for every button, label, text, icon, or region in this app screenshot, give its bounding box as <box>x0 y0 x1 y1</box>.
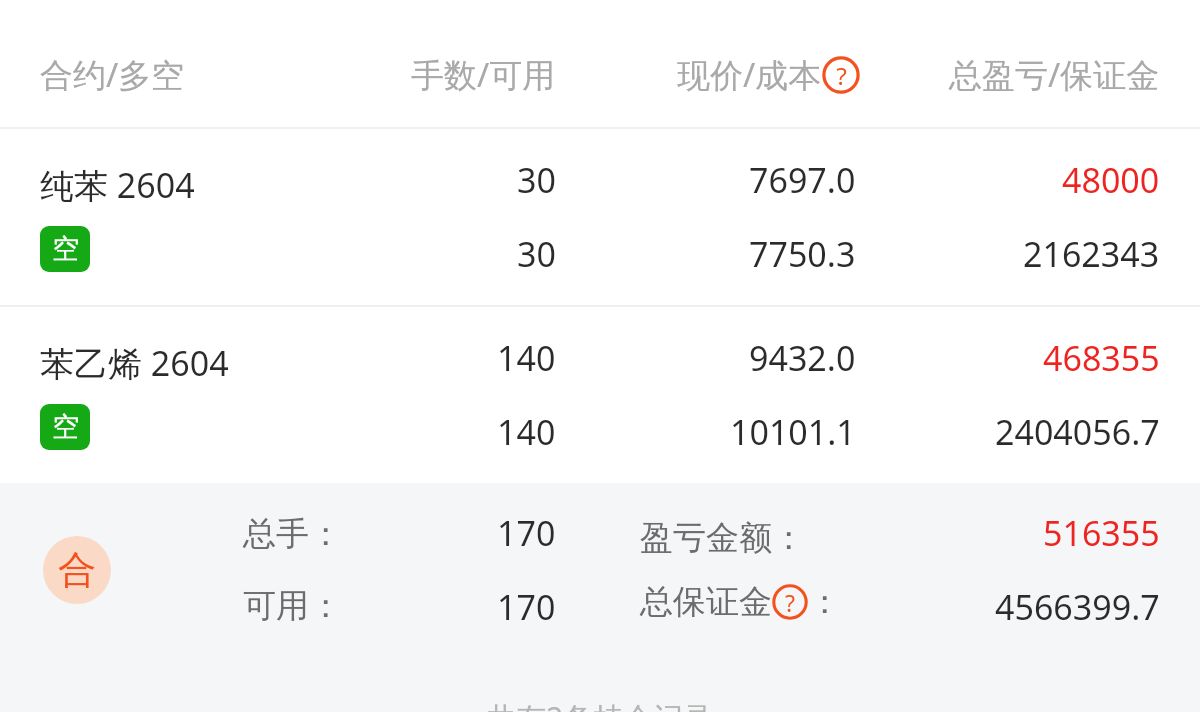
button[interactable]: 苯乙烯 2604 <box>0 307 1200 483</box>
staticText: 合 <box>58 546 96 594</box>
staticText: 手数/可用 <box>411 52 556 97</box>
button[interactable]: 合 <box>0 483 1200 657</box>
staticText: 9432.0 <box>749 335 856 381</box>
staticText: 30 <box>517 157 556 203</box>
staticText: ： <box>808 581 841 623</box>
staticText: 170 <box>497 584 556 630</box>
staticText: 空 <box>52 410 79 444</box>
staticText: 纯苯 2604 <box>40 162 195 208</box>
staticText: 140 <box>497 409 556 455</box>
staticText: 10101.1 <box>730 409 856 455</box>
staticText: 516355 <box>1043 510 1160 556</box>
staticText: 总保证金 <box>640 581 772 623</box>
staticText: 总手： <box>243 513 342 555</box>
staticText: 170 <box>497 510 556 556</box>
staticText: 4566399.7 <box>995 584 1160 630</box>
staticText: 空 <box>52 232 79 266</box>
staticText: 可用： <box>243 585 342 627</box>
staticText: 7697.0 <box>749 157 856 203</box>
staticText: 2404056.7 <box>995 409 1160 455</box>
staticText: 30 <box>517 231 556 277</box>
staticText: 合约/多空 <box>40 52 185 97</box>
staticText: 468355 <box>1043 335 1160 381</box>
staticText: 共有2条持仓记录 <box>486 697 714 712</box>
staticText: 盈亏金额： <box>640 517 805 559</box>
staticText: 140 <box>497 335 556 381</box>
staticText: 总盈亏/保证金 <box>949 52 1160 97</box>
staticText: 苯乙烯 2604 <box>40 340 229 386</box>
staticText: 现价/成本 <box>677 52 822 97</box>
staticText: 48000 <box>1062 157 1160 203</box>
staticText: 7750.3 <box>749 231 856 277</box>
staticText: ? <box>836 59 847 92</box>
staticText: ? <box>785 587 795 618</box>
button[interactable]: 纯苯 2604 <box>0 129 1200 305</box>
staticText: 2162343 <box>1023 231 1160 277</box>
